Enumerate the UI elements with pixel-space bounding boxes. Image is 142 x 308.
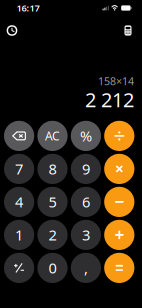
staticText: 6 [82,192,90,212]
button[interactable]: 0 [37,253,68,283]
button[interactable]: 4 [4,187,34,217]
staticText: 5 [48,192,56,212]
button[interactable]: 5 [37,187,68,217]
button[interactable]: 2 [37,220,68,250]
button[interactable]: Toggle sign [4,253,34,283]
button[interactable]: 3 [71,220,101,250]
staticText: 0 [48,258,56,278]
staticText: 16:17 [16,2,39,14]
staticText: , [84,258,88,278]
staticText: 2 212 [85,86,134,113]
staticText: 4 [15,192,23,212]
button[interactable]: 6 [71,187,101,217]
button[interactable]: Recents [1,25,23,36]
button[interactable]: Delete [4,121,34,151]
button[interactable]: % [71,121,101,151]
button[interactable]: Calculator [117,25,139,36]
button[interactable]: 1 [4,220,34,250]
button[interactable]: Add [104,220,134,250]
staticText: 8 [48,159,56,179]
button[interactable]: 7 [4,154,34,184]
button[interactable]: 8 [37,154,68,184]
staticText: AC [45,128,60,144]
button[interactable]: 9 [71,154,101,184]
button[interactable]: Subtract [104,187,134,217]
staticText: 158×14 [98,74,134,88]
staticText: 9 [82,159,90,179]
staticText: 2 [48,225,56,245]
staticText: 3 [82,225,90,245]
staticText: 1 [15,225,23,245]
button[interactable]: Divide [104,121,134,151]
button[interactable]: Multiply [104,154,134,184]
staticText: 7 [15,159,23,179]
button[interactable]: Equals [104,253,134,283]
staticText: % [80,126,92,146]
button[interactable]: AC [37,121,68,151]
button[interactable]: , [71,253,101,283]
